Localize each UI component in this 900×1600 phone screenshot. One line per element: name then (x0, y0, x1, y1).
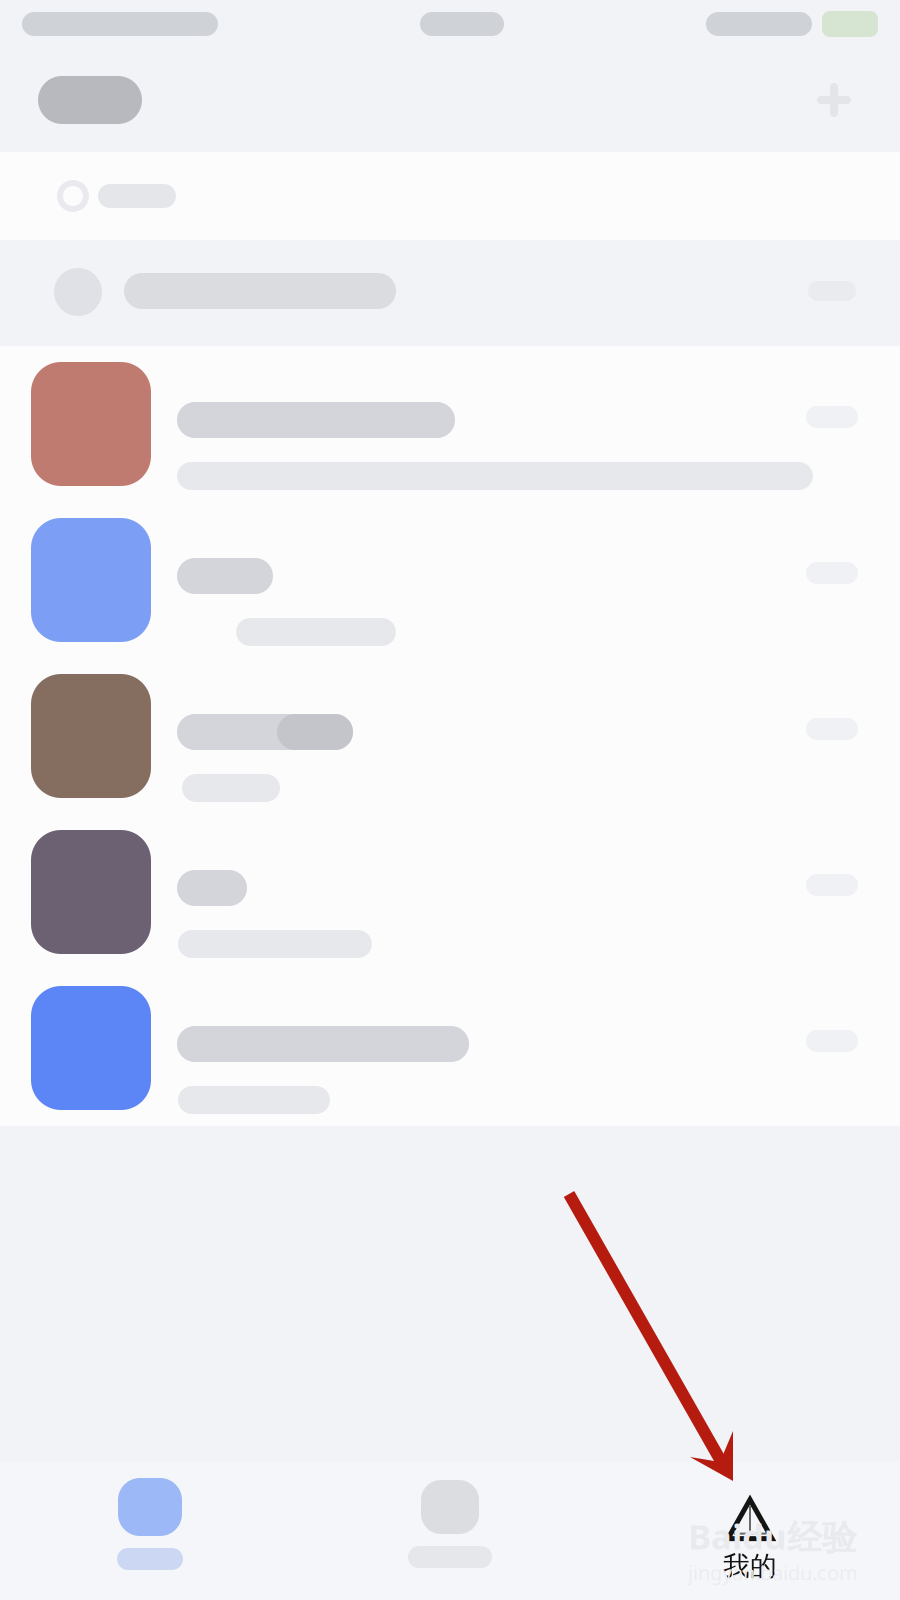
button[interactable] (0, 658, 900, 814)
button[interactable]: 微信 (0, 1478, 300, 1570)
staticText: Baidu经验 (688, 1513, 857, 1559)
button[interactable] (0, 346, 900, 502)
button[interactable]: 我的 (600, 1481, 900, 1567)
button[interactable]: 新建 (802, 68, 866, 132)
staticText: jingyan.baidu.com (688, 1559, 858, 1586)
button[interactable] (0, 814, 900, 970)
button[interactable] (0, 240, 900, 346)
button[interactable]: 通讯录 (300, 1480, 600, 1568)
button[interactable] (0, 970, 900, 1126)
button[interactable]: 搜索 (0, 152, 900, 240)
staticText: 我的 (723, 1550, 777, 1582)
button[interactable] (0, 502, 900, 658)
